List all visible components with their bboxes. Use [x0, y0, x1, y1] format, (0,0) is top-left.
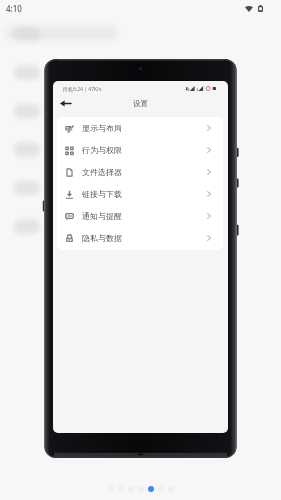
staticText: 通知与提醒: [82, 211, 122, 221]
button[interactable]: 显示与布局: [57, 117, 223, 139]
staticText: 设置: [53, 99, 228, 109]
staticText: 链接与下载: [82, 189, 122, 199]
button[interactable]: 通知与提醒: [57, 205, 223, 227]
staticText: 4:10: [6, 3, 22, 14]
button[interactable]: 行为与权限: [57, 139, 223, 161]
staticText: 文件选择器: [82, 167, 122, 177]
staticText: 显示与布局: [82, 123, 122, 133]
button[interactable]: 隐私与数据: [57, 227, 223, 249]
staticText: 隐私与数据: [82, 233, 122, 243]
button[interactable]: 链接与下载: [57, 183, 223, 205]
button[interactable]: 文件选择器: [57, 161, 223, 183]
staticText: 行为与权限: [82, 145, 122, 155]
staticText: 待机6:24 | 47K/s: [63, 86, 102, 93]
button[interactable]: 返回: [58, 96, 72, 110]
